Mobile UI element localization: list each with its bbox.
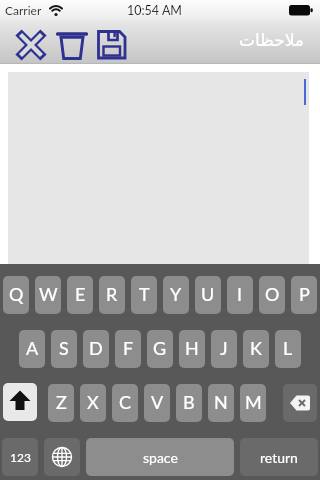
button[interactable]: E — [67, 276, 93, 314]
button[interactable]: B — [176, 384, 202, 422]
button[interactable]: P — [291, 276, 317, 314]
staticText: V — [151, 391, 164, 413]
staticText: G — [153, 337, 167, 359]
staticText: T — [139, 283, 150, 305]
staticText: M — [245, 391, 262, 413]
button[interactable]: D — [83, 330, 109, 368]
staticText: F — [123, 337, 134, 359]
staticText: L — [283, 337, 293, 359]
button[interactable]: K — [243, 330, 269, 368]
button[interactable] — [54, 27, 90, 63]
button[interactable] — [8, 72, 309, 264]
button[interactable]: J — [211, 330, 237, 368]
staticText: X — [87, 391, 99, 413]
button[interactable]: I — [227, 276, 253, 314]
staticText: Y — [170, 283, 182, 305]
staticText: Carrier — [5, 3, 42, 17]
staticText: E — [75, 283, 86, 305]
button[interactable]: V — [144, 384, 170, 422]
button[interactable]: C — [112, 384, 138, 422]
button[interactable]: T — [131, 276, 157, 314]
staticText: P — [299, 283, 310, 305]
button[interactable] — [3, 383, 37, 421]
staticText: W — [39, 283, 58, 305]
staticText: Q — [9, 283, 24, 305]
button[interactable]: R — [99, 276, 125, 314]
staticText: O — [265, 283, 280, 305]
staticText: B — [183, 391, 195, 413]
staticText: U — [201, 283, 215, 305]
staticText: I — [237, 283, 243, 305]
staticText: H — [185, 337, 199, 359]
button[interactable]: M — [240, 384, 266, 422]
staticText: J — [220, 337, 228, 359]
button[interactable]: F — [115, 330, 141, 368]
staticText: K — [250, 337, 262, 359]
button[interactable]: A — [19, 330, 45, 368]
staticText: 10:54 AM — [127, 3, 182, 18]
button[interactable]: H — [179, 330, 205, 368]
button[interactable]: L — [275, 330, 301, 368]
staticText: 123 — [10, 450, 31, 464]
staticText: A — [26, 337, 39, 359]
staticText: return — [260, 449, 298, 466]
staticText: Z — [56, 391, 67, 413]
button[interactable]: Q — [3, 276, 29, 314]
staticText: D — [89, 337, 103, 359]
staticText: R — [106, 283, 118, 305]
button[interactable]: G — [147, 330, 173, 368]
button[interactable] — [12, 27, 50, 63]
button[interactable] — [44, 438, 80, 476]
button[interactable]: 123 — [2, 438, 38, 476]
button[interactable]: N — [208, 384, 234, 422]
button[interactable]: space — [86, 438, 234, 476]
button[interactable]: X — [80, 384, 106, 422]
staticText: ملاحظات — [239, 30, 304, 50]
staticText: space — [143, 449, 178, 466]
staticText: N — [214, 391, 228, 413]
button[interactable]: W — [35, 276, 61, 314]
staticText: S — [59, 337, 69, 359]
button[interactable]: Y — [163, 276, 189, 314]
button[interactable] — [94, 27, 130, 63]
button[interactable]: O — [259, 276, 285, 314]
button[interactable]: U — [195, 276, 221, 314]
button[interactable]: S — [51, 330, 77, 368]
staticText: C — [119, 391, 132, 413]
button[interactable] — [283, 384, 317, 422]
button[interactable]: Z — [48, 384, 74, 422]
button[interactable]: return — [240, 438, 318, 476]
